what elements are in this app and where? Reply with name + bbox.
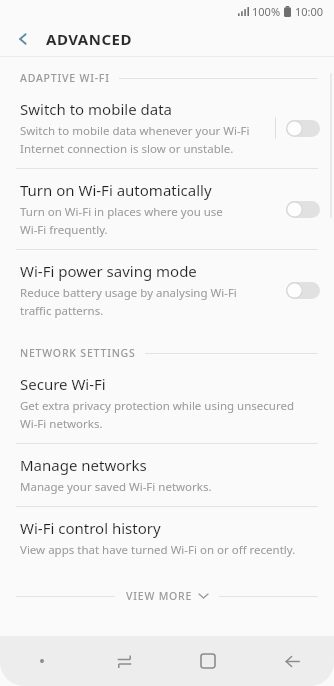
staticText: Manage your saved Wi-Fi networks. [20,479,212,495]
staticText: Manage networks [20,455,147,475]
staticText: Wi-Fi power saving mode [20,261,197,281]
staticText: ADVANCED [46,29,132,49]
staticText: VIEW MORE [126,589,193,603]
button[interactable]: Toggle setting [286,282,320,299]
staticText: Internet connection is slow or unstable. [20,141,234,157]
staticText: Turn on Wi-Fi automatically [20,180,212,200]
button[interactable]: Secure Wi-Fi [0,363,334,443]
button[interactable]: Recent apps [83,636,166,686]
staticText: View apps that have turned Wi-Fi on or o… [20,542,296,558]
staticText: traffic patterns. [20,303,104,319]
staticText: Turn on Wi-Fi in places where you use [20,204,223,220]
staticText: Wi-Fi frequently. [20,222,108,238]
button[interactable]: Home [166,636,250,686]
staticText: Switch to mobile data [20,99,172,119]
staticText: ADAPTIVE WI-FI [20,71,110,85]
staticText: Secure Wi-Fi [20,374,106,394]
staticText: 10:00 [295,4,324,19]
button[interactable]: Toggle setting [286,201,320,218]
button[interactable]: Wi-Fi power saving mode [0,250,334,330]
staticText: Wi-Fi control history [20,518,161,538]
staticText: NETWORK SETTINGS [20,346,136,360]
button[interactable]: Wi-Fi control history [0,507,334,569]
staticText: 100% [252,4,281,19]
button[interactable]: Toggle setting [286,120,320,137]
staticText: Reduce battery usage by analysing Wi-Fi [20,285,237,301]
button[interactable]: Manage networks [0,444,334,506]
button[interactable]: Back [250,636,334,686]
button[interactable]: Turn on Wi-Fi automatically [0,169,334,249]
staticText: Get extra privacy protection while using… [20,398,295,414]
staticText: Switch to mobile data whenever your Wi-F… [20,123,250,139]
button[interactable]: Switch to mobile data [0,88,334,168]
button[interactable]: Navigate up [6,22,40,56]
staticText: Wi-Fi networks. [20,416,103,432]
button[interactable]: VIEW MORE [0,585,334,607]
